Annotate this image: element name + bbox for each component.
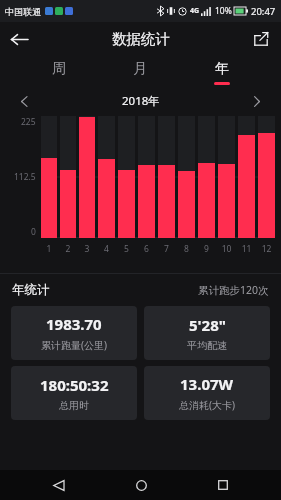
staticText: 1983.70 (46, 314, 102, 334)
staticText: 6 (138, 243, 155, 255)
staticText: 4G (190, 6, 200, 16)
button[interactable]: Home (127, 471, 155, 499)
button[interactable]: 5'28" (144, 306, 270, 360)
button[interactable]: 180:50:32 (11, 366, 137, 420)
button[interactable]: Previous year (14, 91, 34, 111)
staticText: 12 (258, 243, 275, 255)
button[interactable]: Back (4, 24, 34, 54)
button[interactable]: 年 (181, 55, 263, 90)
button[interactable]: Next year (247, 91, 267, 111)
button[interactable] (98, 116, 115, 238)
staticText: 9 (198, 243, 215, 255)
staticText: 112.5 (14, 171, 36, 183)
button[interactable] (79, 116, 95, 238)
button[interactable] (198, 116, 215, 238)
staticText: 月 (133, 60, 147, 78)
button[interactable]: 周 (18, 55, 99, 90)
staticText: 累计跑量(公里) (41, 338, 107, 352)
staticText: 8 (178, 243, 195, 255)
staticText: 5 (118, 243, 135, 255)
button[interactable] (178, 116, 195, 238)
button[interactable]: 1983.70 (11, 306, 137, 360)
staticText: 10 (218, 243, 235, 255)
staticText: 11 (238, 243, 255, 255)
button[interactable] (138, 116, 155, 238)
staticText: 3 (79, 243, 95, 255)
staticText: 总用时 (59, 399, 89, 412)
button[interactable] (218, 116, 235, 238)
staticText: 年统计 (12, 282, 50, 298)
staticText: 180:50:32 (40, 375, 109, 395)
staticText: 7 (158, 243, 175, 255)
staticText: 周 (52, 60, 66, 78)
staticText: 年 (215, 60, 229, 78)
staticText: 总消耗(大卡) (179, 398, 235, 412)
staticText: 数据统计 (112, 30, 170, 48)
button[interactable] (41, 116, 57, 238)
button[interactable] (238, 116, 255, 238)
staticText: 0 (31, 226, 36, 238)
button[interactable] (118, 116, 135, 238)
staticText: 225 (21, 116, 36, 128)
staticText: 10% (215, 5, 232, 17)
button[interactable] (60, 116, 76, 238)
staticText: 2018年 (122, 93, 160, 109)
staticText: 13.07W (180, 374, 234, 394)
staticText: 累计跑步120次 (198, 283, 269, 297)
staticText: 4 (98, 243, 115, 255)
staticText: 5'28" (189, 315, 226, 335)
button[interactable]: 13.07W (144, 366, 270, 420)
button[interactable]: Back (44, 471, 72, 499)
button[interactable]: Share (247, 25, 275, 53)
staticText: 20:47 (251, 5, 276, 18)
button[interactable] (258, 116, 275, 238)
staticText: 1 (41, 243, 57, 255)
staticText: 平均配速 (187, 339, 227, 352)
staticText: 中国联通 (5, 6, 41, 17)
button[interactable]: Recent apps (209, 471, 237, 499)
staticText: 2 (60, 243, 76, 255)
button[interactable]: 月 (99, 55, 181, 90)
button[interactable] (158, 116, 175, 238)
